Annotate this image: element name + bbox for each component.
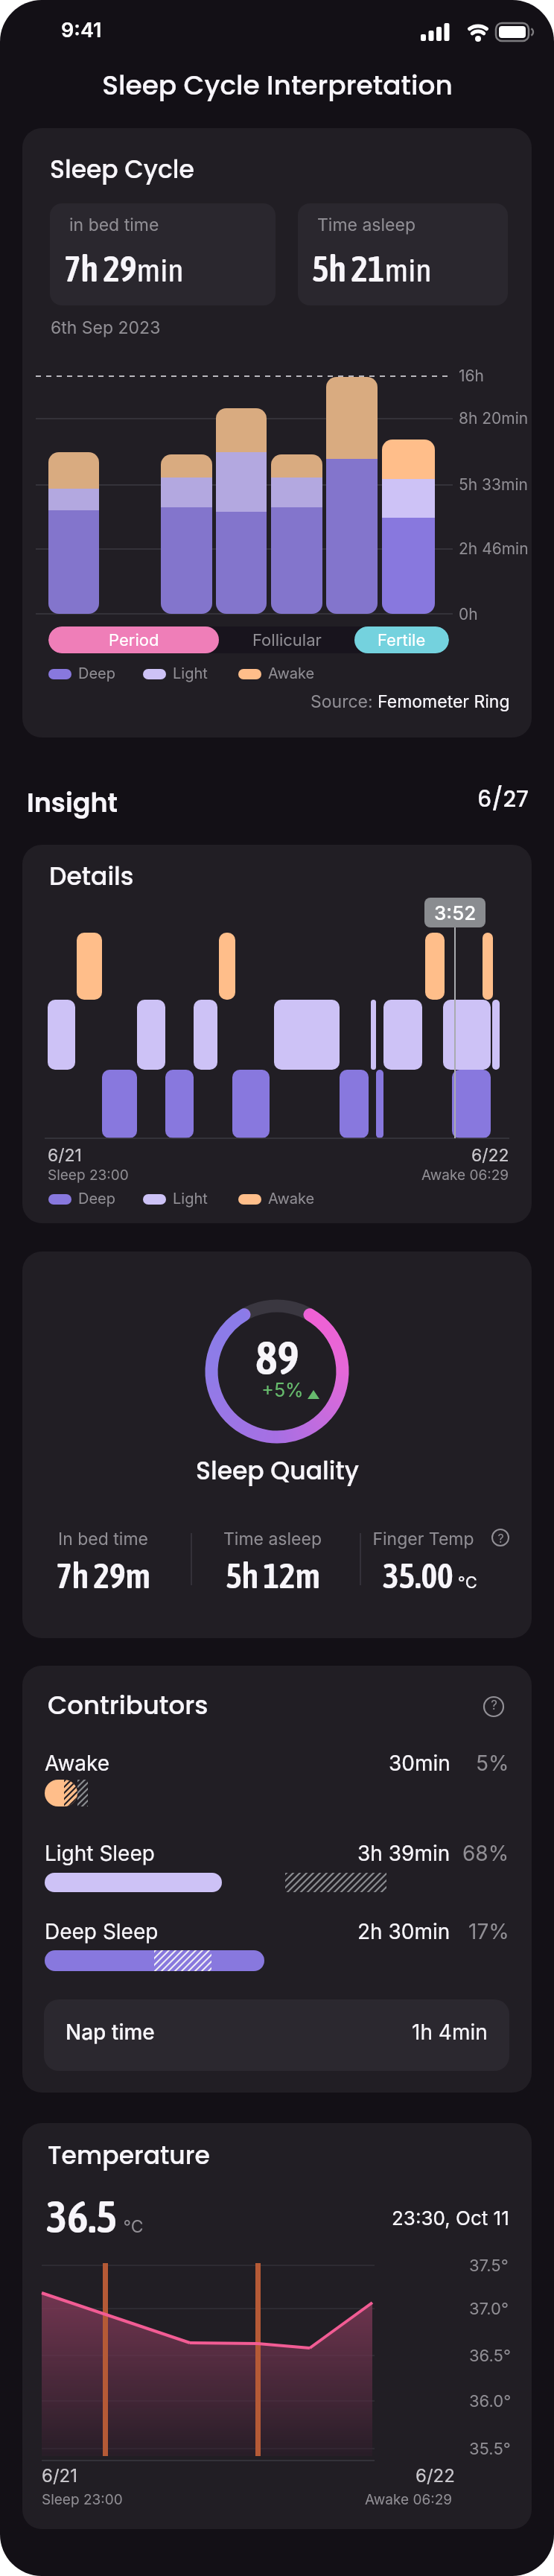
- staticText: Awake 06:29: [365, 2491, 453, 2508]
- staticText: 5h 33min: [459, 475, 528, 494]
- staticText: Insight: [27, 784, 118, 821]
- staticText: Temperature: [48, 2138, 210, 2172]
- staticText: Period: [109, 630, 159, 650]
- staticText: 36.5 °C: [46, 2191, 144, 2242]
- staticText: Light: [173, 1190, 208, 1208]
- staticText: 6/27: [477, 784, 529, 815]
- staticText: Deep Sleep: [45, 1919, 159, 1944]
- staticText: 37.0°: [469, 2299, 509, 2319]
- staticText: 89: [255, 1331, 299, 1384]
- staticText: Finger Temp: [372, 1529, 474, 1549]
- staticText: Source: Femometer Ring: [311, 691, 510, 712]
- staticText: 5%: [476, 1751, 509, 1776]
- staticText: Details: [49, 859, 134, 893]
- staticText: ?: [497, 1531, 504, 1545]
- button[interactable]: Time asleep: [298, 203, 508, 305]
- staticText: Awake: [268, 664, 315, 682]
- staticText: 3:52: [434, 901, 477, 924]
- staticText: 37.5°: [469, 2256, 509, 2276]
- staticText: 3h 39min: [357, 1841, 450, 1866]
- staticText: Follicular: [252, 630, 322, 650]
- staticText: 7h 29min: [64, 248, 184, 289]
- button[interactable]: in bed time: [50, 203, 276, 305]
- staticText: Awake: [268, 1190, 315, 1208]
- button[interactable]: Follicular: [219, 626, 354, 653]
- button[interactable]: [491, 1529, 509, 1546]
- staticText: 36.5°: [469, 2346, 511, 2366]
- staticText: Light Sleep: [45, 1841, 155, 1866]
- staticText: 9:41: [61, 18, 102, 42]
- staticText: +5%: [261, 1379, 304, 1401]
- staticText: 2h 30min: [357, 1919, 450, 1944]
- staticText: ?: [491, 1698, 497, 1713]
- staticText: 17%: [468, 1919, 509, 1944]
- staticText: Deep: [78, 1190, 115, 1208]
- staticText: 6/22: [415, 2465, 455, 2487]
- staticText: Awake 06:29: [421, 1167, 509, 1184]
- staticText: 16h: [459, 367, 484, 385]
- staticText: Sleep Cycle Interpretation: [102, 66, 453, 104]
- staticText: Sleep 23:00: [42, 2491, 123, 2508]
- staticText: 6/22: [471, 1145, 509, 1166]
- button[interactable]: [483, 1695, 505, 1718]
- staticText: Sleep Quality: [196, 1453, 359, 1488]
- staticText: Deep: [78, 664, 115, 682]
- staticText: 36.0°: [469, 2391, 512, 2411]
- staticText: 5h 12m: [226, 1556, 320, 1596]
- staticText: 6th Sep 2023: [51, 317, 161, 338]
- staticText: Contributors: [48, 1687, 208, 1723]
- staticText: Light: [173, 664, 208, 682]
- staticText: 5h 21min: [312, 248, 432, 289]
- staticText: Sleep Cycle: [50, 152, 194, 186]
- staticText: Nap time: [66, 2020, 155, 2045]
- button[interactable]: Fertile: [354, 626, 449, 653]
- staticText: 7h 29m: [56, 1556, 150, 1596]
- staticText: Time asleep: [223, 1529, 322, 1549]
- staticText: 68%: [462, 1841, 509, 1866]
- staticText: 1h 4min: [412, 2020, 488, 2045]
- staticText: 0h: [459, 605, 478, 624]
- button[interactable]: Period: [48, 626, 219, 653]
- staticText: 8h 20min: [459, 409, 529, 428]
- staticText: in bed time: [69, 215, 159, 235]
- staticText: 23:30, Oct 11: [392, 2207, 509, 2230]
- staticText: 35.00 °C: [383, 1556, 477, 1596]
- button[interactable]: Nap time: [44, 1999, 509, 2071]
- staticText: 6/21: [42, 2465, 77, 2487]
- staticText: 2h 46min: [459, 539, 529, 558]
- staticText: 30min: [389, 1751, 450, 1776]
- staticText: 35.5°: [469, 2439, 511, 2459]
- staticText: 6/21: [48, 1145, 82, 1166]
- staticText: Fertile: [378, 630, 426, 650]
- staticText: In bed time: [58, 1529, 148, 1549]
- staticText: Time asleep: [317, 215, 415, 235]
- staticText: Awake: [45, 1751, 110, 1776]
- staticText: Sleep 23:00: [48, 1167, 129, 1184]
